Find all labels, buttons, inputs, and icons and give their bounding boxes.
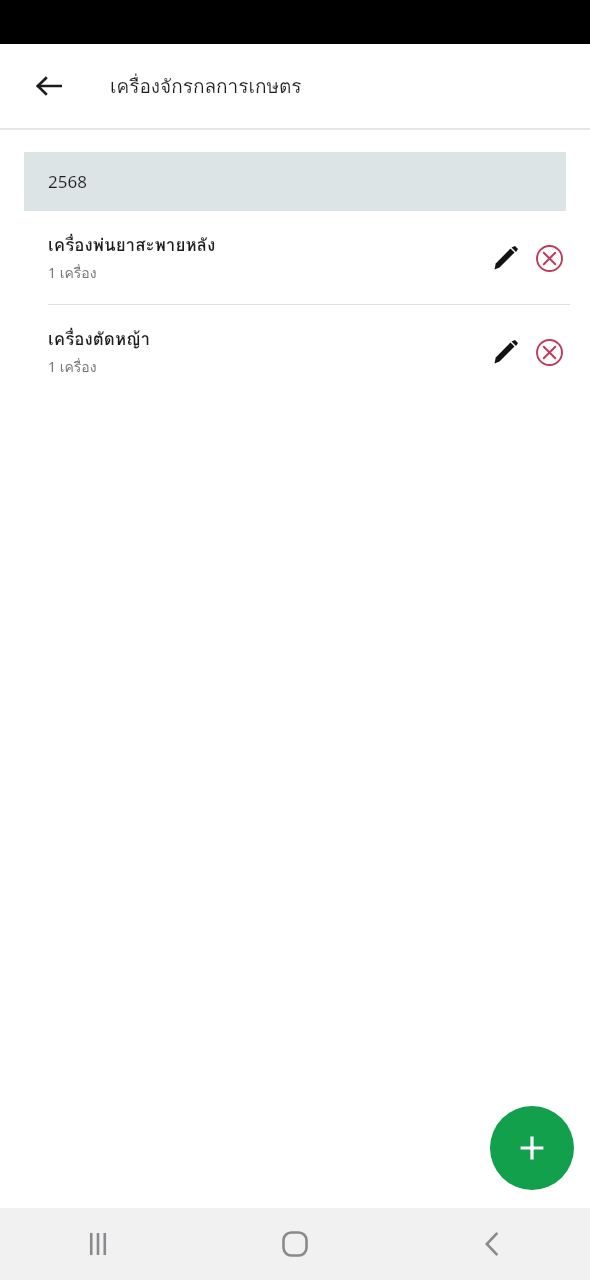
button[interactable]: Delete: [527, 330, 571, 374]
staticText: 1 เครื่อง: [48, 356, 97, 378]
button[interactable]: Edit: [483, 330, 527, 374]
button[interactable]: Recents: [0, 1208, 196, 1280]
staticText: เครื่องตัดหญ้า: [48, 325, 151, 352]
staticText: 2568: [48, 170, 87, 193]
button[interactable]: 2568: [24, 152, 566, 211]
button[interactable]: Back: [393, 1208, 590, 1280]
staticText: เครื่องพ่นยาสะพายหลัง: [48, 231, 216, 258]
button[interactable]: Delete: [527, 236, 571, 280]
button[interactable]: เครื่องพ่นยาสะพายหลัง: [0, 211, 590, 304]
button[interactable]: Home: [196, 1208, 393, 1280]
staticText: 1 เครื่อง: [48, 262, 97, 284]
button[interactable]: Add: [490, 1106, 574, 1190]
button[interactable]: เครื่องตัดหญ้า: [0, 305, 590, 398]
button[interactable]: Back: [25, 62, 73, 110]
button[interactable]: Edit: [483, 236, 527, 280]
staticText: เครื่องจักรกลการเกษตร: [110, 71, 302, 101]
